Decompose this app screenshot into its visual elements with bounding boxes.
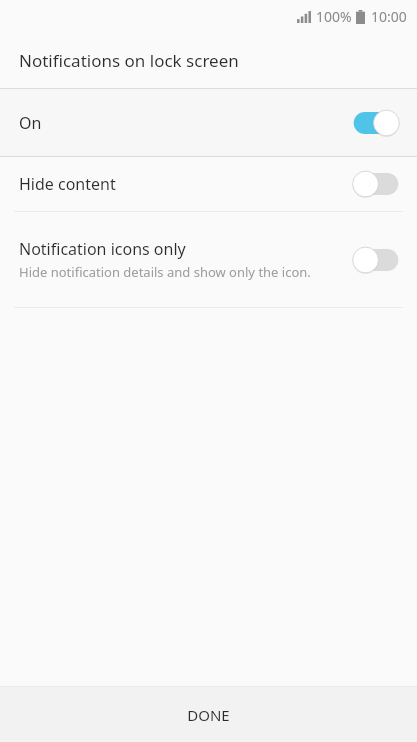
button[interactable]: DONE <box>0 687 417 742</box>
button[interactable]: Hide content <box>0 157 417 211</box>
button[interactable]: On <box>0 89 417 156</box>
staticText: 10:00 <box>371 7 407 26</box>
button[interactable]: Toggle On <box>353 109 399 137</box>
staticText: 100% <box>316 7 352 26</box>
staticText: Hide notification details and show only … <box>19 263 311 281</box>
staticText: Hide content <box>19 173 116 195</box>
staticText: DONE <box>187 705 230 725</box>
button[interactable]: Toggle Hide content <box>353 170 399 198</box>
button[interactable]: Toggle Notification icons only <box>353 246 399 274</box>
button[interactable]: Notification icons only <box>0 212 417 307</box>
staticText: Notification icons only <box>19 238 186 260</box>
staticText: Notifications on lock screen <box>19 49 239 72</box>
staticText: On <box>19 112 42 134</box>
